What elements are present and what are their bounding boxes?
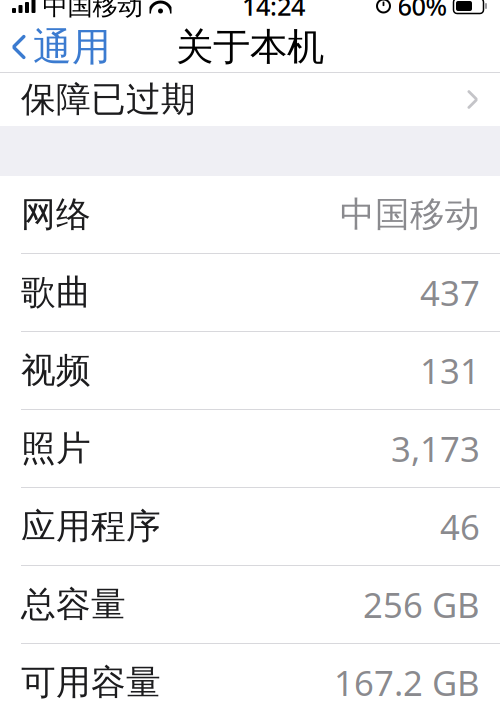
staticText: 131 <box>420 347 480 393</box>
staticText: 照片 <box>21 427 91 470</box>
staticText: 视频 <box>21 349 91 392</box>
staticText: 应用程序 <box>21 505 161 548</box>
button[interactable]: 总容量 <box>0 566 500 643</box>
staticText: 可用容量 <box>21 661 161 704</box>
staticText: 歌曲 <box>21 271 91 314</box>
button[interactable]: 保障已过期 <box>0 73 500 126</box>
button[interactable]: 视频 <box>0 332 500 409</box>
staticText: 14:24 <box>242 0 305 23</box>
staticText: 60% <box>397 0 447 23</box>
staticText: 46 <box>440 503 480 549</box>
staticText: 总容量 <box>21 583 126 626</box>
staticText: 关于本机 <box>176 24 324 70</box>
button[interactable]: 歌曲 <box>0 254 500 331</box>
staticText: 中国移动 <box>42 0 142 21</box>
staticText: 保障已过期 <box>21 78 196 121</box>
staticText: 通用 <box>33 23 111 71</box>
button[interactable]: 应用程序 <box>0 488 500 565</box>
staticText: 网络 <box>21 193 91 236</box>
staticText: 437 <box>420 269 480 315</box>
button[interactable]: 可用容量 <box>0 644 500 711</box>
button[interactable]: 通用 <box>0 22 121 72</box>
staticText: 3,173 <box>391 425 480 471</box>
button[interactable]: 照片 <box>0 410 500 487</box>
staticText: 256 GB <box>363 581 480 627</box>
staticText: 中国移动 <box>340 193 480 236</box>
button[interactable]: 网络 <box>0 176 500 253</box>
staticText: 167.2 GB <box>334 659 480 705</box>
